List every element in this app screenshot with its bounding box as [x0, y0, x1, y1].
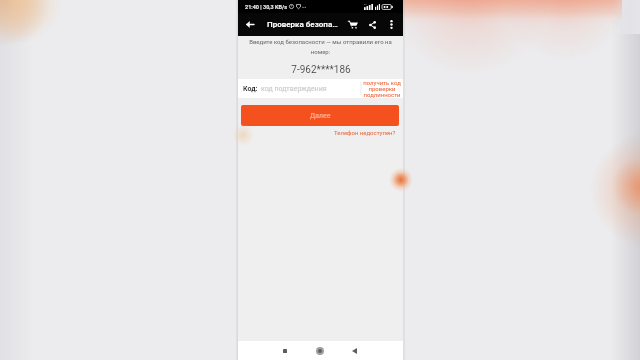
staticText: получить код проверки подлинности — [362, 79, 402, 98]
button[interactable]: код подтверждения — [256, 79, 361, 98]
staticText: Проверка безопа… — [267, 20, 338, 29]
button[interactable]: Floating action button — [390, 166, 416, 192]
staticText: 7-962****186 — [291, 64, 351, 76]
button[interactable]: Share — [363, 13, 382, 36]
button[interactable]: Back — [347, 344, 361, 358]
staticText: Введите код безопасности — мы отправили … — [245, 38, 396, 55]
button[interactable]: More options — [382, 13, 401, 36]
button[interactable]: Cart — [342, 13, 363, 36]
button[interactable]: Recent apps — [278, 344, 292, 358]
button[interactable]: Home — [313, 344, 327, 358]
button[interactable]: Телефон недоступен? — [334, 129, 396, 136]
button[interactable]: Далее — [241, 105, 399, 126]
button[interactable]: Navigate up — [238, 13, 261, 36]
staticText: 21:40 | 30,3 KB/s — [245, 4, 287, 10]
staticText: код подтверждения — [261, 85, 327, 93]
button[interactable]: получить код проверки подлинности — [362, 79, 402, 98]
staticText: Далее — [310, 112, 331, 120]
staticText: Код: — [243, 85, 258, 93]
